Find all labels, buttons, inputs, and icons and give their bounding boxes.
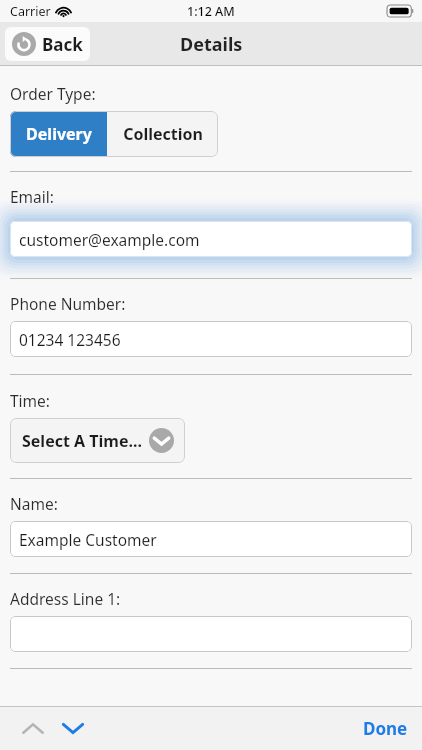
staticText: Carrier (10, 3, 51, 20)
other: Back (12, 32, 36, 56)
button[interactable]: Back (5, 27, 90, 61)
staticText: 01234 123456 (19, 329, 121, 350)
staticText: Example Customer (19, 529, 157, 550)
staticText: Address Line 1: (10, 588, 121, 609)
staticText: Delivery (26, 123, 92, 145)
staticText: Done (363, 717, 408, 740)
button[interactable]: Select A Time... (10, 418, 185, 463)
staticText: Details (180, 32, 243, 57)
staticText: 1:12 AM (187, 3, 235, 20)
staticText: Name: (10, 493, 58, 514)
button[interactable]: Example Customer (10, 521, 412, 557)
staticText: customer@example.com (19, 229, 200, 250)
staticText: Order Type: (10, 83, 96, 104)
button[interactable]: Next field (54, 709, 92, 747)
button[interactable]: Delivery (10, 111, 107, 157)
staticText: Back (42, 33, 83, 56)
other: Open time picker (149, 428, 174, 453)
button[interactable] (10, 616, 412, 652)
button[interactable]: 01234 123456 (10, 321, 412, 357)
staticText: Email: (10, 186, 54, 207)
button[interactable]: Previous field (14, 709, 52, 747)
staticText: Time: (10, 390, 51, 411)
staticText: Select A Time... (22, 430, 142, 452)
staticText: Collection (123, 123, 203, 145)
button[interactable]: Done (349, 709, 422, 748)
button[interactable]: customer@example.com (10, 221, 412, 257)
button[interactable]: Collection (107, 111, 218, 157)
staticText: Phone Number: (10, 293, 126, 314)
